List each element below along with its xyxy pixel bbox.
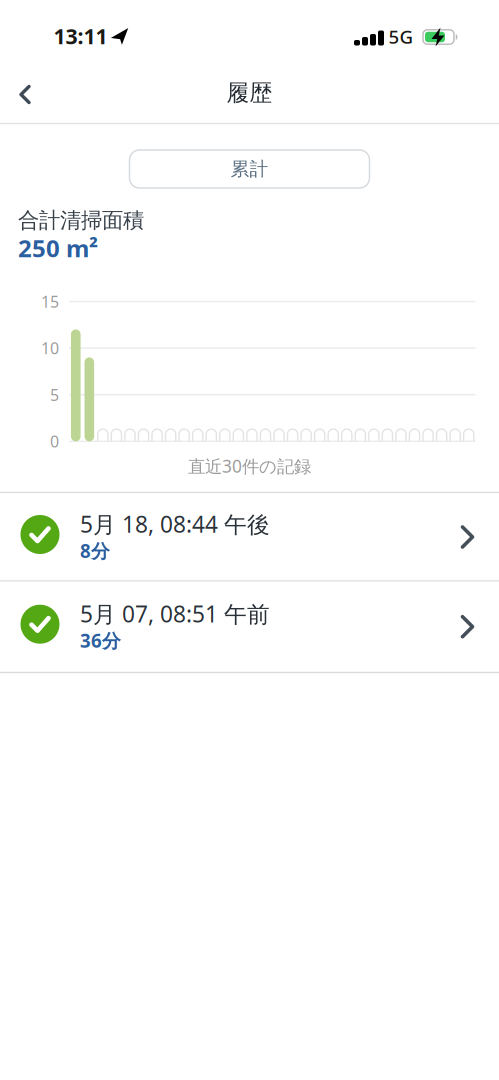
staticText: 5G <box>388 24 413 49</box>
staticText: 36分 <box>80 628 121 653</box>
button[interactable]: 5月 07, 08:51 午前 <box>0 582 499 672</box>
staticText: 8分 <box>80 538 110 563</box>
button[interactable]: 5月 18, 08:44 午後 <box>0 493 499 580</box>
staticText: 5月 07, 08:51 午前 <box>80 599 270 629</box>
staticText: 履歴 <box>226 79 272 107</box>
button[interactable]: Back <box>3 72 47 116</box>
staticText: 15 <box>41 291 59 312</box>
staticText: 5月 18, 08:44 午後 <box>80 509 270 539</box>
staticText: 250 m² <box>18 232 98 264</box>
staticText: 累計 <box>230 157 268 180</box>
button[interactable]: 累計 <box>129 150 369 188</box>
staticText: 13:11 <box>53 22 107 50</box>
staticText: 直近30件の記録 <box>188 454 311 477</box>
staticText: 0 <box>50 431 59 452</box>
staticText: 10 <box>41 337 59 359</box>
staticText: 合計清掃面積 <box>18 207 144 234</box>
staticText: 5 <box>50 384 59 405</box>
